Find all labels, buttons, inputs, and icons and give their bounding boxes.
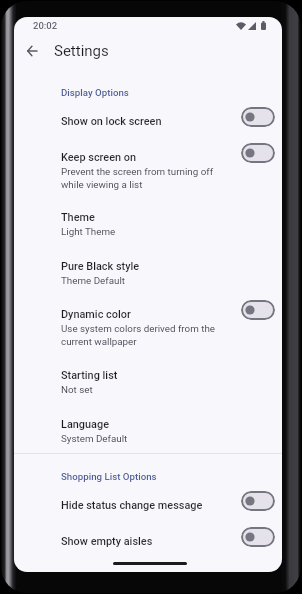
button[interactable]: Toggle [241,300,275,320]
staticText: Language [61,418,109,431]
button[interactable]: Back [18,37,46,65]
staticText: Settings [54,42,109,60]
staticText: Display Options [61,87,129,98]
staticText: 20:02 [33,20,58,31]
button[interactable]: Pure Black style [14,254,282,278]
staticText: while viewing a list [61,179,143,190]
staticText: Keep screen on [61,151,137,164]
staticText: Show on lock screen [61,115,162,128]
staticText: Prevent the screen from turning off [61,166,214,177]
staticText: Light Theme [61,226,116,237]
staticText: Pure Black style [61,260,140,273]
staticText: Use system colors derived from the [61,323,215,334]
button[interactable]: Toggle [241,143,275,163]
button[interactable]: Show empty aisles [14,529,282,553]
staticText: System Default [61,433,128,444]
staticText: Shopping List Options [61,471,157,482]
button[interactable]: Starting list [14,363,282,387]
staticText: Starting list [61,369,118,382]
staticText: Theme Default [61,275,126,286]
staticText: current wallpaper [61,336,137,347]
button[interactable]: Dynamic color [14,302,282,326]
button[interactable]: Hide status change message [14,493,282,517]
button[interactable]: Language [14,412,282,436]
button[interactable]: Toggle [241,491,275,511]
staticText: Theme [61,211,95,224]
button[interactable]: Toggle [241,527,275,547]
staticText: Show empty aisles [61,535,153,548]
staticText: Hide status change message [61,499,203,512]
button[interactable]: Show on lock screen [14,109,282,133]
button[interactable]: Theme [14,205,282,229]
staticText: Dynamic color [61,308,131,321]
button[interactable]: Toggle [241,107,275,127]
button[interactable]: Keep screen on [14,145,282,169]
staticText: Not set [61,384,93,395]
